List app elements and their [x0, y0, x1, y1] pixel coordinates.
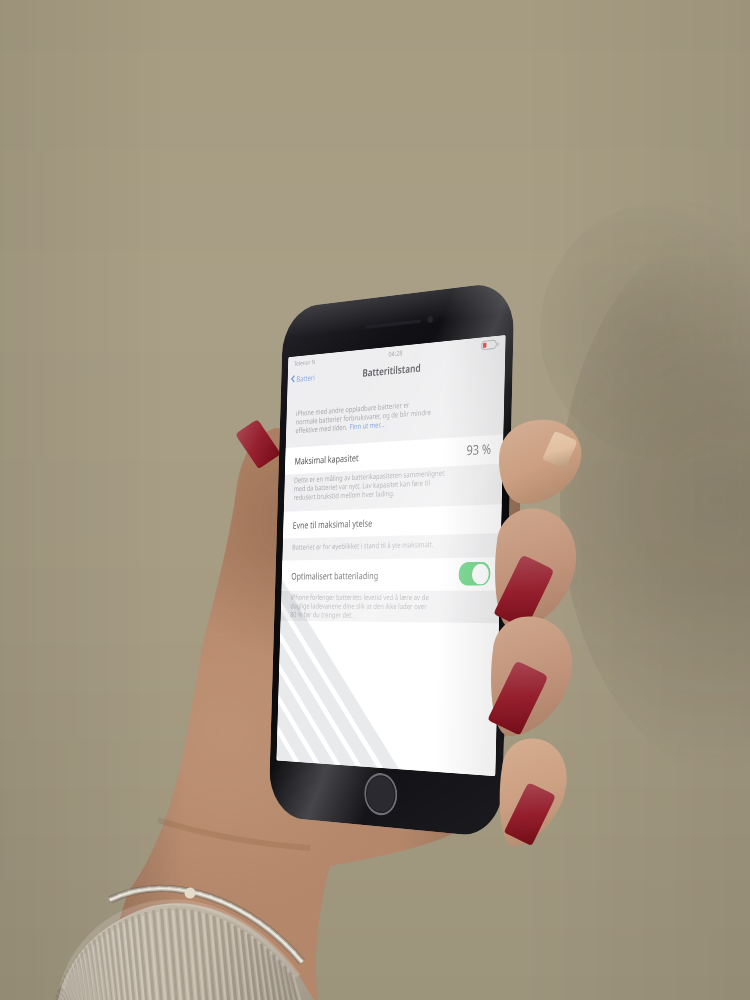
staticText: Maksimal kapasitet [294, 451, 359, 467]
staticText: iPhone forlenger batteriets levetid ved … [290, 592, 429, 620]
staticText: Evne til maksimal ytelse [293, 517, 373, 532]
staticText: iPhone med andre oppladbare batterier er… [295, 398, 432, 435]
button[interactable] [283, 504, 502, 538]
staticText: Batteri [296, 372, 315, 384]
staticText: Optimalisert batterilading [291, 569, 379, 582]
button[interactable] [281, 557, 500, 591]
button[interactable] [285, 434, 503, 475]
button[interactable]: Batteri [291, 372, 315, 384]
staticText: Telenor N [294, 357, 316, 368]
staticText: Batteritilstand [362, 361, 421, 380]
button[interactable]: Home button [364, 772, 398, 817]
button[interactable]: Optimalisert batterilading på [458, 562, 491, 586]
staticText: 93 % [466, 439, 492, 459]
staticText: Dette er en måling av batterikapasiteten… [293, 467, 445, 502]
staticText: 04:28 [388, 348, 403, 360]
staticText: Batteriet er for øyeblikket i stand til … [292, 539, 434, 552]
staticText: Finn ut mer… [349, 419, 385, 431]
